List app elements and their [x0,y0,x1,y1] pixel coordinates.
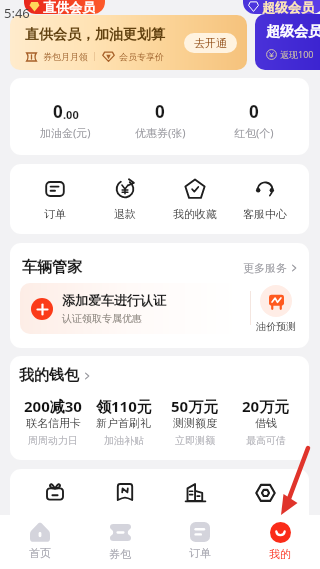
staticText: 200减30 [24,396,82,416]
button[interactable]: 超级会员 [255,14,320,70]
staticText: 0 [155,100,165,123]
staticText: 加油金(元) [40,125,91,140]
button[interactable]: 订单 [160,522,240,569]
staticText: .00 [63,107,79,122]
staticText: 首页 [29,546,51,560]
staticText: 去开通 [194,36,227,50]
staticText: 我的钱包 [19,366,79,385]
staticText: 联名信用卡 [26,416,81,430]
button[interactable]: 我的会员卡 [90,482,160,502]
button[interactable]: 首页 [0,522,80,569]
staticText: 超级会员 [262,0,314,14]
staticText: 0 [249,100,259,123]
staticText: 5:46 [4,4,30,22]
button[interactable]: 客服中心 [230,164,300,234]
staticText: 油价预测 [256,320,296,333]
button[interactable]: 20万元 [230,396,301,447]
staticText: 直供会员 [43,0,95,14]
staticText: 车辆管家 [22,258,82,277]
button[interactable]: 我的钱包 [19,366,91,385]
staticText: 测测额度 [173,416,217,430]
button[interactable]: 200减30 [18,396,88,447]
staticText: 我的收藏 [173,207,217,221]
staticText: 认证领取专属优惠 [62,312,142,325]
button[interactable]: 券包 [80,522,160,569]
button[interactable]: 0 [113,100,207,155]
button[interactable]: 我的 [240,522,320,569]
staticText: 立即测额 [175,434,215,447]
staticText: 返现100 [280,48,314,60]
button[interactable]: 我的礼包 [19,482,90,502]
button[interactable]: 0 [18,100,113,155]
staticText: 更多服务 [243,261,287,275]
button[interactable]: 添加爱车进行认证 [20,283,240,334]
button[interactable]: 我的收藏 [160,164,230,234]
staticText: 0 [53,100,63,123]
button[interactable]: 0 [207,100,301,155]
staticText: 券包月月领 [43,51,88,62]
staticText: 超级会员 [266,23,320,41]
button[interactable]: 订单 [19,164,90,234]
staticText: 会员专享价 [119,51,164,62]
staticText: 客服中心 [243,207,287,221]
button[interactable]: 更多服务 [243,261,298,275]
staticText: 券包 [109,547,131,561]
staticText: 退款 [114,207,136,221]
staticText: 直供会员，加油更划算 [25,26,165,44]
staticText: 周周动力日 [28,434,78,447]
button[interactable]: 领110元 [88,396,159,447]
staticText: 领110元 [96,396,152,416]
button[interactable]: 设置 [230,482,300,503]
staticText: 订单 [189,546,211,560]
staticText: 加油补贴 [104,434,144,447]
button[interactable]: 企业加油 [160,482,230,503]
staticText: 新户首刷礼 [96,416,151,430]
staticText: 添加爱车进行认证 [62,292,166,308]
staticText: 红包(个) [234,125,274,140]
staticText: 优惠券(张) [135,125,186,140]
button[interactable]: 50万元 [159,396,230,447]
button[interactable]: 油价预测 [248,285,304,333]
staticText: 20万元 [242,396,290,416]
staticText: 50万元 [171,396,219,416]
button[interactable]: 退款 [90,164,160,234]
button[interactable]: 去开通 [184,33,237,53]
staticText: 借钱 [255,416,277,430]
button[interactable]: 直供会员，加油更划算 [10,15,247,70]
staticText: 我的 [269,547,291,561]
staticText: 订单 [44,207,66,221]
staticText: 最高可借 [246,434,286,447]
